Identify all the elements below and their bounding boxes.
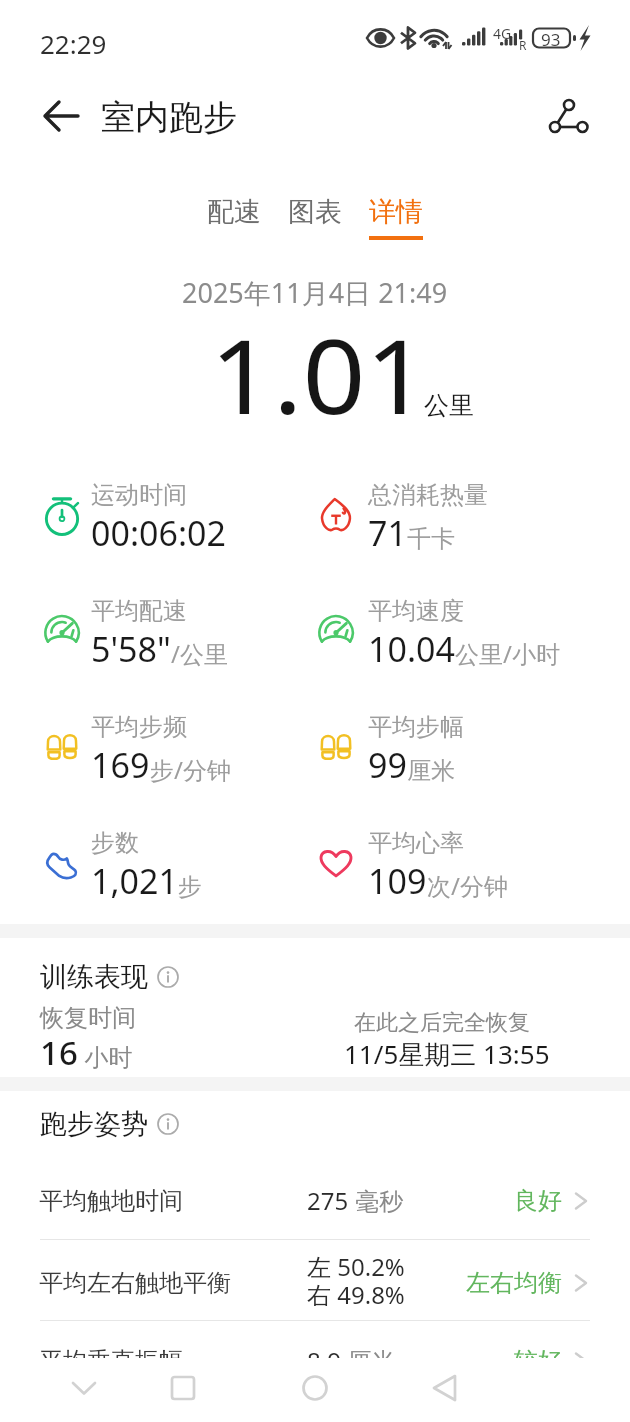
staticText: 厘米 [407,756,455,786]
staticText: R [519,37,527,53]
button[interactable]: 平均心率 [307,816,597,912]
staticText: 93 [541,28,561,51]
staticText: 详情 [369,195,423,229]
staticText: 平均垂直振幅 [39,1346,183,1376]
staticText: 较好 [514,1346,562,1376]
button[interactable]: Hide keyboard [53,1358,115,1420]
staticText: 公里 [424,390,474,421]
staticText: 99 [368,742,407,788]
button[interactable]: 平均步频 [33,700,323,796]
staticText: /公里 [171,637,228,670]
staticText: 22:29 [40,26,107,61]
button[interactable]: 平均左右触地平衡 [0,1243,630,1322]
staticText: 步/分钟 [150,753,231,786]
button[interactable]: 平均配速 [33,584,323,680]
button[interactable]: 总消耗热量 [307,468,597,564]
button[interactable]: 平均速度 [307,584,597,680]
staticText: 平均配速 [91,596,187,626]
staticText: 在此之后完全恢复 [354,1009,530,1037]
staticText: 步 [178,872,202,902]
staticText: 图表 [288,195,342,229]
staticText: 公里/小时 [455,637,560,670]
button[interactable]: 平均步幅 [307,700,597,796]
staticText: 左右均衡 [466,1268,562,1298]
staticText: 室内跑步 [101,96,237,139]
staticText: 运动时间 [91,480,187,510]
button[interactable]: 训练表现 [40,960,179,994]
button[interactable]: Recents [152,1358,214,1420]
staticText: 平均心率 [368,828,464,858]
staticText: 2025年11月4日 21:49 [182,274,448,311]
button[interactable]: 图表 [274,195,356,257]
staticText: 275 [307,1184,349,1217]
staticText: 小时 [78,1040,133,1073]
staticText: 109 [368,858,427,904]
staticText: 左 50.2% [307,1250,405,1278]
staticText: 4G [493,24,512,43]
staticText: 169 [91,742,150,788]
staticText: 平均速度 [368,596,464,626]
staticText: 1.01 [210,304,429,444]
button[interactable]: Home [284,1358,346,1420]
staticText: 良好 [514,1186,562,1216]
staticText: 平均左右触地平衡 [39,1268,231,1298]
staticText: 千卡 [407,524,455,554]
button[interactable]: 步数 [33,816,323,912]
staticText: 00:06:02 [91,510,226,556]
button[interactable]: Share [535,86,597,148]
staticText: 右 49.8% [307,1278,405,1306]
staticText: 平均触地时间 [39,1186,183,1216]
staticText: 8.9 [307,1344,341,1377]
button[interactable]: 运动时间 [33,468,323,564]
button[interactable]: Back [414,1358,476,1420]
button[interactable]: 平均垂直振幅 [0,1324,630,1397]
staticText: 配速 [207,195,261,229]
staticText: 恢复时间 [40,1003,136,1033]
staticText: 步数 [91,828,139,858]
staticText: 训练表现 [40,960,148,994]
button[interactable]: 跑步姿势 [40,1107,179,1141]
staticText: 次/分钟 [427,869,508,902]
staticText: 平均步频 [91,712,187,742]
staticText: 10.04 [368,626,455,672]
button[interactable]: 配速 [193,195,275,257]
staticText: 71 [368,510,407,556]
staticText: 毫秒 [349,1184,404,1217]
button[interactable]: 平均触地时间 [0,1164,630,1237]
button[interactable]: Back [26,86,88,148]
staticText: 11/5星期三 13:55 [344,1036,550,1072]
staticText: 平均步幅 [368,712,464,742]
staticText: 总消耗热量 [368,480,488,510]
staticText: 16 [40,1030,78,1075]
button[interactable]: 详情 [355,195,437,257]
staticText: 厘米 [341,1344,396,1377]
staticText: 1,021 [91,858,178,904]
staticText: 5'58" [91,626,171,672]
staticText: 跑步姿势 [40,1107,148,1141]
